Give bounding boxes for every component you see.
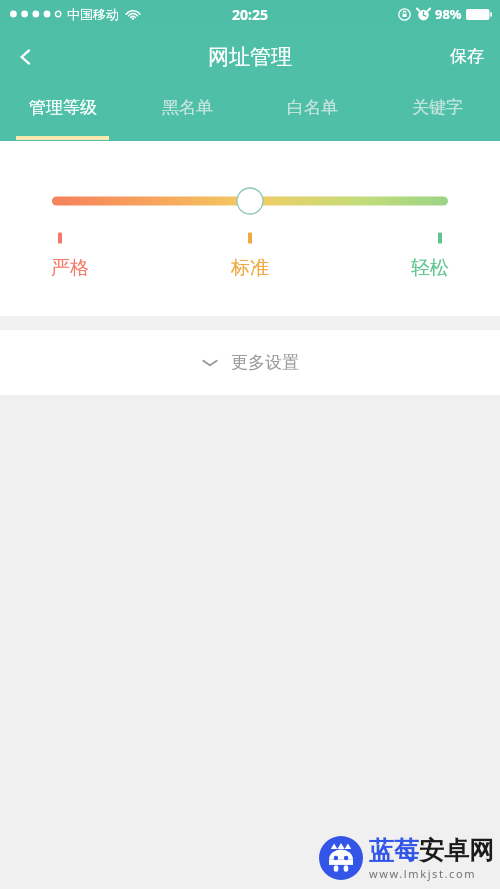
staticText: 蓝莓 (369, 835, 419, 866)
staticText: 白名单 (287, 97, 338, 118)
staticText: 黑名单 (162, 97, 213, 118)
button[interactable]: 更多设置 (0, 330, 500, 395)
staticText: 更多设置 (231, 352, 299, 373)
staticText: 中国移动 (67, 6, 119, 22)
button[interactable]: 管理等级 (0, 85, 125, 141)
staticText: 管理等级 (29, 97, 97, 118)
button[interactable]: 白名单 (250, 85, 375, 141)
staticText: 网址管理 (208, 44, 292, 70)
staticText: 轻松 (411, 256, 449, 280)
staticText: 严格 (51, 256, 89, 280)
staticText: 标准 (231, 256, 269, 280)
staticText: 20:25 (232, 5, 268, 24)
staticText: 关键字 (412, 97, 463, 118)
staticText: 98% (435, 5, 462, 23)
button[interactable]: 保存 (450, 46, 484, 67)
staticText: www.lmkjst.com (369, 866, 477, 881)
button[interactable]: 关键字 (375, 85, 500, 141)
staticText: 保存 (450, 46, 484, 67)
button[interactable]: Management level slider (0, 179, 500, 223)
button[interactable]: Back (0, 31, 52, 83)
button[interactable]: 黑名单 (125, 85, 250, 141)
staticText: 安卓网 (419, 835, 494, 866)
